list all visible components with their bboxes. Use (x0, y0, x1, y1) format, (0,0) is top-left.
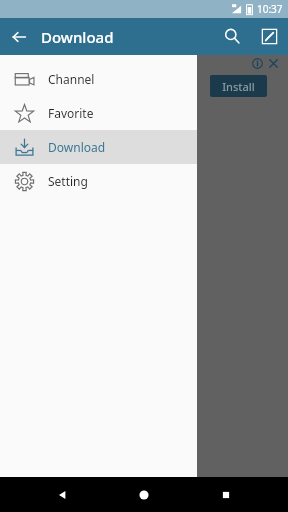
staticText: Install (222, 79, 255, 94)
button[interactable]: Channel (0, 62, 197, 96)
button[interactable]: Compose (251, 18, 288, 55)
staticText: 10:37 (257, 2, 283, 16)
button[interactable]: Back (0, 18, 37, 55)
staticText: Favorite (48, 105, 94, 121)
button[interactable]: Search (214, 18, 251, 55)
button[interactable]: Info (251, 57, 264, 70)
button[interactable]: Recents (206, 477, 246, 512)
button[interactable]: Install (210, 75, 267, 97)
button[interactable]: Download (0, 130, 197, 164)
button[interactable]: Close (267, 57, 280, 70)
button[interactable]: Home (124, 477, 164, 512)
staticText: Channel (48, 71, 95, 87)
staticText: Download (48, 139, 106, 155)
staticText: Download (41, 27, 114, 47)
staticText: Setting (48, 173, 88, 189)
button[interactable]: Setting (0, 164, 197, 198)
button[interactable]: Back (42, 477, 82, 512)
button[interactable]: Favorite (0, 96, 197, 130)
